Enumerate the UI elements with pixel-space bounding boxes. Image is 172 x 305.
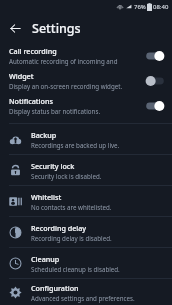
button[interactable]: Backup bbox=[0, 124, 172, 154]
button[interactable]: Configuration bbox=[0, 279, 172, 305]
button[interactable]: Toggle bbox=[145, 100, 165, 112]
button[interactable]: Notifications bbox=[0, 93, 172, 118]
staticText: Whitelist bbox=[31, 192, 62, 202]
button[interactable]: Toggle bbox=[145, 50, 165, 62]
staticText: Scheduled cleanup is disabled. bbox=[31, 265, 120, 273]
staticText: Recordings are backed up live. bbox=[31, 141, 120, 149]
button[interactable]: Cleanup bbox=[0, 248, 172, 278]
staticText: Recording delay is disabled. bbox=[31, 234, 112, 242]
staticText: Security lock is disabled. bbox=[31, 172, 102, 180]
button[interactable]: Toggle bbox=[145, 75, 165, 87]
staticText: Advanced settings and preferences. bbox=[31, 294, 135, 302]
staticText: No contacts are whitelisted. bbox=[31, 203, 112, 211]
staticText: Display an on-screen recording widget. bbox=[9, 82, 123, 90]
staticText: Settings bbox=[32, 20, 81, 37]
staticText: Configuration bbox=[31, 283, 79, 293]
staticText: 08:40 bbox=[153, 3, 169, 11]
staticText: Cleanup bbox=[31, 254, 60, 264]
staticText: Recording delay bbox=[31, 223, 87, 233]
button[interactable]: Recording delay bbox=[0, 217, 172, 247]
staticText: Notifications bbox=[9, 96, 53, 106]
button[interactable]: Whitelist bbox=[0, 186, 172, 216]
staticText: Display status bar notifications. bbox=[9, 107, 101, 115]
staticText: Security lock bbox=[31, 161, 75, 171]
staticText: Backup bbox=[31, 130, 57, 140]
staticText: Call recording bbox=[9, 46, 57, 56]
button[interactable]: Security lock bbox=[0, 155, 172, 185]
staticText: Widget bbox=[9, 71, 34, 81]
button[interactable]: Back bbox=[6, 19, 24, 37]
button[interactable]: Widget bbox=[0, 68, 172, 93]
staticText: Automatic recording of incoming and outg… bbox=[9, 57, 141, 65]
staticText: 76% bbox=[134, 3, 146, 11]
button[interactable]: Call recording bbox=[0, 43, 172, 68]
